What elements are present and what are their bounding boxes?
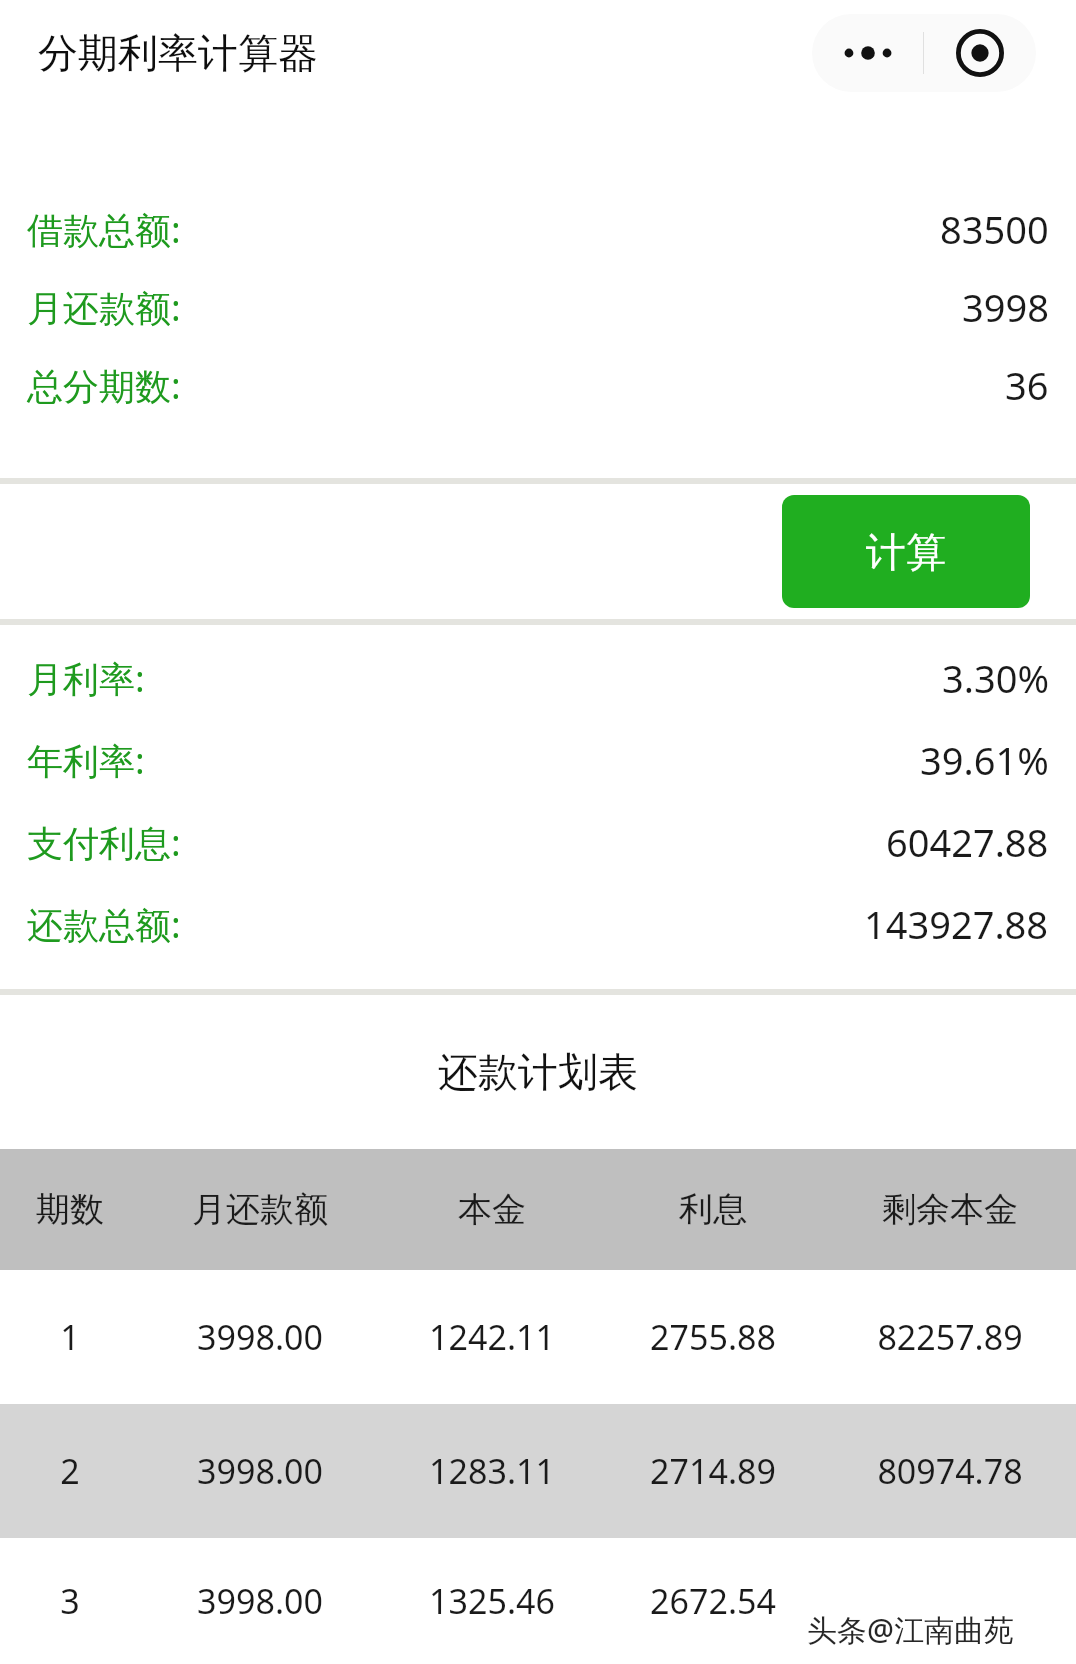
button[interactable]: 总分期数: [0,346,1076,424]
staticText: 60427.88 [886,816,1049,868]
staticText: 期数 [36,1188,104,1231]
staticText: 1283.11 [429,1448,555,1494]
button[interactable]: 月还款额: [0,268,1076,346]
staticText: 3.30% [942,652,1049,704]
staticText: 80974.78 [877,1448,1023,1494]
staticText: 36 [1005,359,1049,411]
staticText: 月还款额: [27,283,181,332]
staticText: 还款计划表 [438,1047,638,1097]
staticText: 月利率: [27,654,145,703]
staticText: 2755.88 [650,1314,776,1360]
staticText: 支付利息: [27,818,181,867]
button[interactable]: 借款总额: [0,190,1076,268]
staticText: 2 [60,1448,80,1494]
button[interactable]: 还款总额: [0,883,1076,965]
button[interactable]: 月利率: [0,637,1076,719]
staticText: 3998.00 [197,1448,323,1494]
button[interactable]: 年利率: [0,719,1076,801]
button[interactable]: 2 [0,1404,1076,1538]
staticText: 计算 [866,527,946,577]
staticText: 143927.88 [864,898,1049,950]
button[interactable]: 1 [0,1270,1076,1404]
staticText: 83500 [940,203,1049,255]
staticText: 3 [60,1578,80,1624]
button[interactable]: 支付利息: [0,801,1076,883]
staticText: 2714.89 [650,1448,776,1494]
staticText: 1 [60,1314,80,1360]
staticText: 3998.00 [197,1314,323,1360]
staticText: 还款总额: [27,900,181,949]
button[interactable]: 期数 [0,1149,1076,1270]
button[interactable]: Close mini program [924,14,1036,92]
staticText: 分期利率计算器 [38,28,318,78]
button[interactable]: 3 [0,1538,1076,1664]
staticText: 头条@江南曲苑 [807,1609,1014,1650]
staticText: 剩余本金 [882,1188,1018,1231]
button[interactable]: More options [812,14,923,92]
staticText: 利息 [679,1188,747,1231]
staticText: 3998.00 [197,1578,323,1624]
staticText: 39.61% [920,734,1049,786]
staticText: 82257.89 [877,1314,1023,1360]
staticText: 1325.46 [429,1578,555,1624]
staticText: 借款总额: [27,205,181,254]
staticText: 本金 [458,1188,526,1231]
staticText: 总分期数: [27,361,181,410]
button[interactable]: 计算 [782,495,1030,608]
staticText: 3998 [962,281,1049,333]
staticText: 年利率: [27,736,145,785]
staticText: 1242.11 [429,1314,555,1360]
staticText: 月还款额 [192,1188,328,1231]
staticText: 2672.54 [650,1578,776,1624]
